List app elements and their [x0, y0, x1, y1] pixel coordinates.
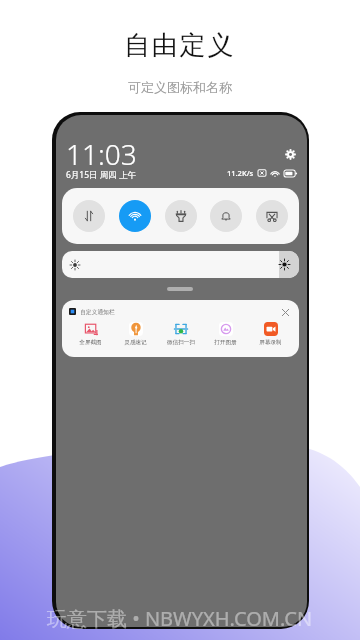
button[interactable]: Settings [283, 147, 297, 161]
button[interactable]: 打开图册 [203, 322, 248, 346]
staticText: 打开图册 [214, 339, 237, 346]
staticText: 11:03 [66, 135, 137, 173]
button[interactable]: 灵感速记 [113, 322, 158, 346]
staticText: 屏幕录制 [259, 339, 282, 346]
button[interactable]: Silent [210, 200, 242, 232]
staticText: 可定义图标和名称 [128, 79, 232, 95]
button[interactable]: WLAN [119, 200, 151, 232]
staticText: 自定义通知栏 [80, 308, 115, 315]
button[interactable]: 微信扫一扫 [158, 322, 203, 346]
button[interactable]: Brightness [62, 251, 299, 278]
staticText: 11.2K/s [227, 168, 254, 178]
button[interactable]: Close [279, 306, 291, 318]
staticText: 微信扫一扫 [167, 339, 195, 346]
button[interactable]: Flashlight [165, 200, 197, 232]
button[interactable]: 全屏截图 [68, 322, 113, 346]
staticText: 全屏截图 [79, 339, 102, 346]
button[interactable]: Screenshot [256, 200, 288, 232]
button[interactable]: 屏幕录制 [248, 322, 293, 346]
staticText: 6月15日 周四 上午 [66, 169, 137, 181]
staticText: 玩意下载 • NBWYXH.COM.CN [47, 605, 313, 632]
staticText: 自由定义 [124, 29, 236, 62]
staticText: 灵感速记 [124, 339, 147, 346]
button[interactable]: Mobile data [73, 200, 105, 232]
